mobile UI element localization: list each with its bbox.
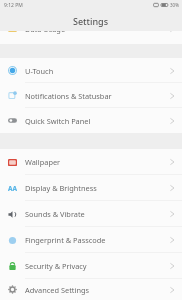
button[interactable]: U-Touch <box>0 58 182 83</box>
button[interactable]: AA <box>0 175 182 201</box>
staticText: Security & Privacy <box>25 261 87 271</box>
staticText: Fingerprint & Passcode <box>25 235 106 245</box>
button[interactable]: Wallpaper <box>0 149 182 175</box>
button[interactable]: Quick Switch Panel <box>0 108 182 133</box>
staticText: Wallpaper <box>25 157 61 167</box>
button[interactable]: Advanced Settings <box>0 279 182 300</box>
button[interactable]: Data Usage <box>0 16 182 42</box>
staticText: 30% <box>170 2 179 8</box>
staticText: Quick Switch Panel <box>25 116 91 126</box>
staticText: Data Usage <box>25 24 66 34</box>
button[interactable]: Fingerprint & Passcode <box>0 227 182 253</box>
button[interactable]: Security & Privacy <box>0 253 182 279</box>
staticText: Notifications & Statusbar <box>25 91 112 101</box>
staticText: U-Touch <box>25 66 54 76</box>
staticText: Settings <box>73 15 109 27</box>
staticText: Display & Brightness <box>25 183 97 193</box>
button[interactable]: Notifications & Statusbar <box>0 83 182 108</box>
staticText: Sounds & Vibrate <box>25 209 85 219</box>
staticText: 9:12 PM <box>4 2 23 9</box>
staticText: Advanced Settings <box>25 285 90 295</box>
staticText: AA <box>8 184 17 193</box>
button[interactable]: Sounds & Vibrate <box>0 201 182 227</box>
